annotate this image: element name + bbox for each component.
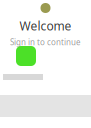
staticText: Welcome — [19, 18, 71, 34]
staticText: Sign in to continue — [10, 37, 81, 47]
